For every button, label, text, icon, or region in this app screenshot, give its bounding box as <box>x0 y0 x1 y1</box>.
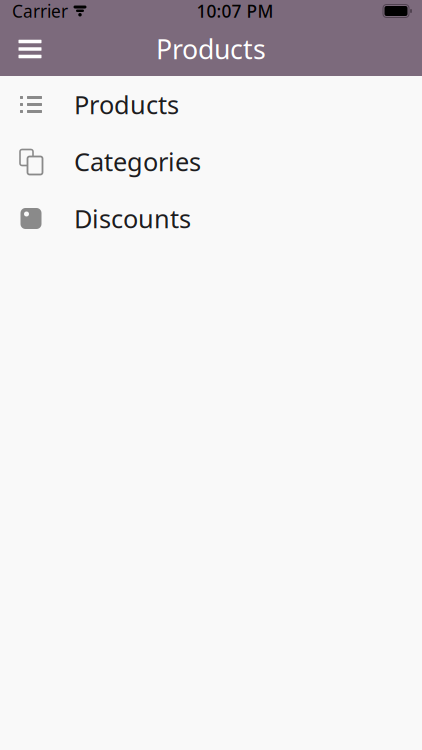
staticText: Discounts <box>74 202 191 235</box>
button[interactable]: Discounts <box>0 190 422 247</box>
staticText: Carrier <box>12 0 68 22</box>
staticText: Products <box>74 88 179 121</box>
staticText: 10:07 PM <box>196 0 273 22</box>
staticText: Categories <box>74 145 201 178</box>
button[interactable]: Categories <box>0 133 422 190</box>
button[interactable]: Menu <box>7 26 53 72</box>
staticText: Products <box>156 31 266 67</box>
button[interactable]: Products <box>0 76 422 133</box>
